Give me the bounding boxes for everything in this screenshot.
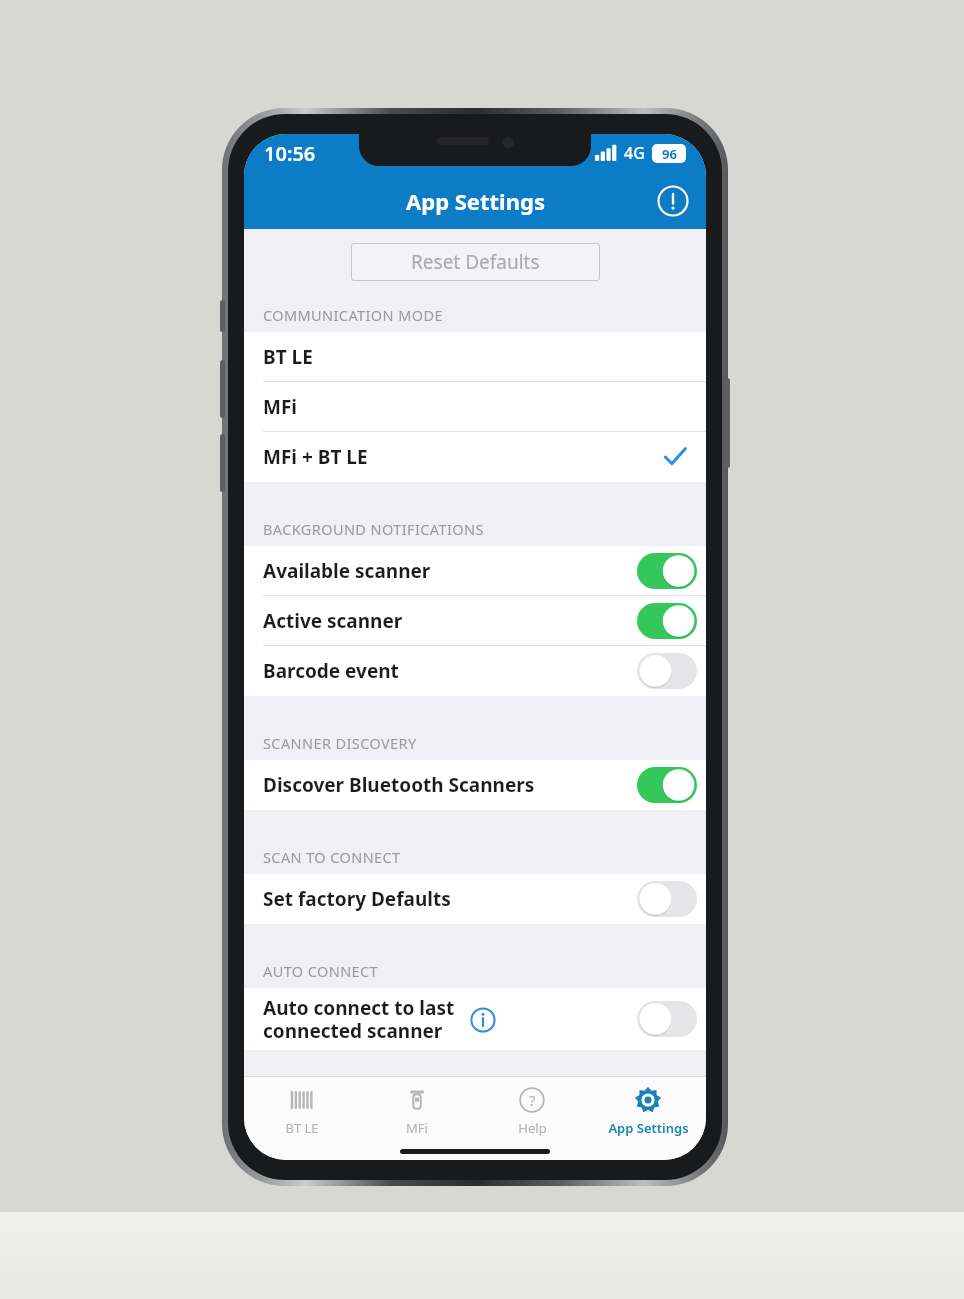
button[interactable]: Barcode event bbox=[244, 646, 706, 696]
button[interactable]: Switch on bbox=[636, 766, 698, 804]
button[interactable]: Switch off bbox=[636, 880, 698, 918]
button[interactable]: Discover Bluetooth Scanners bbox=[244, 760, 706, 810]
staticText: Set factory Defaults bbox=[263, 886, 451, 912]
staticText: BT LE bbox=[285, 1119, 319, 1137]
staticText: MFi bbox=[263, 394, 298, 420]
staticText: Help bbox=[518, 1119, 547, 1137]
button[interactable]: Auto connect to last connected scanner bbox=[244, 988, 706, 1050]
staticText: 10:56 bbox=[264, 140, 316, 167]
button[interactable]: Set factory Defaults bbox=[244, 874, 706, 924]
button[interactable]: Switch on bbox=[636, 602, 698, 640]
staticText: Available scanner bbox=[263, 558, 431, 584]
button[interactable]: Available scanner bbox=[244, 546, 706, 596]
staticText: SCAN TO CONNECT bbox=[263, 847, 401, 867]
staticText: SCANNER DISCOVERY bbox=[263, 733, 417, 753]
staticText: Reset Defaults bbox=[411, 249, 540, 275]
staticText: Active scanner bbox=[263, 608, 403, 634]
staticText: Discover Bluetooth Scanners bbox=[263, 772, 535, 798]
button[interactable]: MFi + BT LE bbox=[244, 432, 706, 482]
button[interactable]: Reset Defaults bbox=[351, 243, 600, 281]
button[interactable]: Switch off bbox=[636, 652, 698, 690]
staticText: MFi bbox=[406, 1119, 428, 1137]
staticText: Barcode event bbox=[263, 658, 399, 684]
staticText: App Settings bbox=[608, 1119, 689, 1137]
staticText: BACKGROUND NOTIFICATIONS bbox=[263, 519, 484, 539]
button[interactable]: App Settings bbox=[590, 1085, 706, 1160]
staticText: 4G bbox=[624, 142, 645, 164]
staticText: BT LE bbox=[263, 344, 313, 370]
button[interactable]: BT LE bbox=[244, 332, 706, 382]
staticText: Auto connect to last connected scanner bbox=[263, 995, 455, 1044]
button[interactable]: Switch on bbox=[636, 552, 698, 590]
staticText: App Settings bbox=[406, 186, 545, 216]
staticText: ? bbox=[529, 1090, 536, 1110]
button[interactable]: Active scanner bbox=[244, 596, 706, 646]
staticText: 96 bbox=[662, 145, 677, 163]
button[interactable]: MFi bbox=[359, 1085, 474, 1160]
button[interactable]: MFi bbox=[244, 382, 706, 432]
staticText: AUTO CONNECT bbox=[263, 961, 379, 981]
button[interactable]: Information bbox=[652, 180, 694, 222]
staticText: MFi + BT LE bbox=[263, 444, 368, 470]
button[interactable]: BT LE bbox=[244, 1085, 359, 1160]
button[interactable]: More information bbox=[468, 1005, 498, 1035]
button[interactable]: Switch off bbox=[636, 1000, 698, 1038]
staticText: COMMUNICATION MODE bbox=[263, 305, 443, 325]
button[interactable]: ? bbox=[474, 1085, 590, 1160]
